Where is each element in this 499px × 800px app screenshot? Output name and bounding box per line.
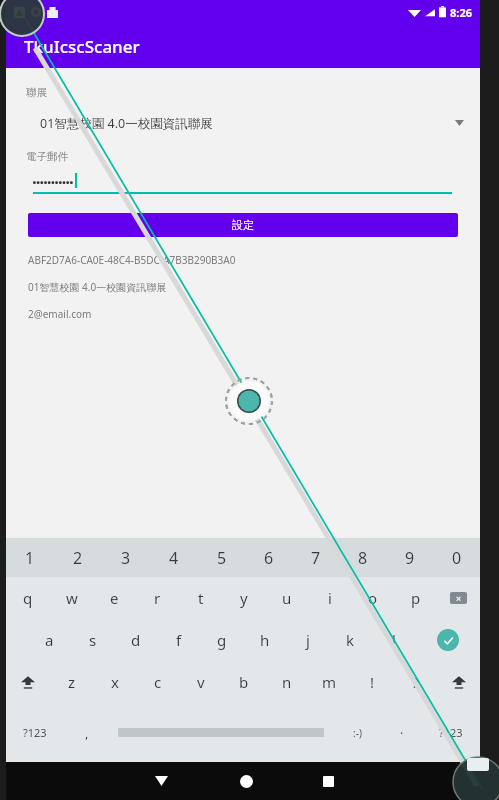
- button[interactable]: z: [50, 661, 93, 703]
- staticText: y: [240, 588, 248, 608]
- button[interactable]: q: [6, 577, 50, 619]
- staticText: ?123: [439, 725, 463, 740]
- button[interactable]: x: [93, 661, 136, 703]
- button[interactable]: Shift: [437, 661, 480, 703]
- staticText: 8:26: [450, 5, 472, 20]
- button[interactable]: 5: [198, 538, 245, 577]
- staticText: ×: [456, 592, 462, 604]
- button[interactable]: 0: [433, 538, 480, 577]
- staticText: 8: [358, 547, 368, 569]
- button[interactable]: u: [265, 577, 308, 619]
- staticText: m: [322, 672, 337, 692]
- button[interactable]: k: [329, 619, 372, 661]
- staticText: d: [131, 630, 141, 650]
- staticText: 0: [452, 547, 462, 569]
- staticText: 6: [264, 547, 274, 569]
- staticText: h: [260, 630, 270, 650]
- staticText: f: [176, 630, 182, 650]
- staticText: z: [68, 672, 76, 692]
- button[interactable]: 8: [339, 538, 386, 577]
- staticText: :-): [353, 726, 362, 740]
- button[interactable]: r: [136, 577, 179, 619]
- button[interactable]: d: [114, 619, 157, 661]
- staticText: b: [239, 672, 249, 692]
- button[interactable]: Space: [109, 703, 333, 762]
- button[interactable]: 6: [245, 538, 292, 577]
- button[interactable]: 設定: [28, 213, 458, 237]
- button[interactable]: 3: [102, 538, 150, 577]
- button[interactable]: Back: [115, 762, 207, 800]
- staticText: 3: [121, 547, 131, 569]
- staticText: !: [370, 672, 375, 692]
- staticText: 01智慧校園 4.0一校園資訊聯展: [28, 280, 167, 294]
- staticText: s: [89, 630, 97, 650]
- button[interactable]: n: [265, 661, 308, 703]
- staticText: p: [411, 588, 421, 608]
- button[interactable]: g: [200, 619, 243, 661]
- button[interactable]: 9: [386, 538, 433, 577]
- staticText: 5: [217, 547, 227, 569]
- button[interactable]: b: [222, 661, 265, 703]
- staticText: o: [368, 588, 378, 608]
- button[interactable]: m: [308, 661, 351, 703]
- staticText: x: [111, 672, 119, 692]
- button[interactable]: Home: [207, 762, 285, 800]
- button[interactable]: v: [179, 661, 222, 703]
- staticText: 4: [169, 547, 179, 569]
- button[interactable]: Enter: [415, 619, 480, 661]
- button[interactable]: p: [394, 577, 437, 619]
- button[interactable]: :-): [333, 703, 382, 762]
- staticText: 聯展: [26, 86, 47, 99]
- button[interactable]: j: [286, 619, 329, 661]
- staticText: a: [45, 630, 54, 650]
- staticText: 2: [73, 547, 83, 569]
- button[interactable]: ·: [382, 703, 422, 762]
- button[interactable]: [33, 173, 452, 194]
- staticText: i: [328, 588, 332, 608]
- staticText: ,: [85, 724, 89, 742]
- button[interactable]: h: [243, 619, 286, 661]
- staticText: ?: [412, 672, 419, 692]
- staticText: TkuIcscScaner: [24, 35, 140, 58]
- staticText: w: [66, 588, 78, 608]
- button[interactable]: i: [308, 577, 351, 619]
- button[interactable]: w: [50, 577, 93, 619]
- button[interactable]: 2: [54, 538, 102, 577]
- staticText: g: [217, 630, 227, 650]
- staticText: ?123: [23, 725, 47, 740]
- button[interactable]: s: [71, 619, 114, 661]
- button[interactable]: ?: [394, 661, 437, 703]
- button[interactable]: !: [351, 661, 394, 703]
- button[interactable]: y: [222, 577, 265, 619]
- button[interactable]: 4: [150, 538, 198, 577]
- staticText: q: [23, 588, 33, 608]
- button[interactable]: Recents: [285, 762, 371, 800]
- staticText: l: [392, 630, 396, 650]
- button[interactable]: ,: [64, 703, 109, 762]
- staticText: v: [197, 672, 205, 692]
- button[interactable]: l: [372, 619, 415, 661]
- button[interactable]: 01智慧校園 4.0一校園資訊聯展: [6, 108, 480, 138]
- button[interactable]: a: [28, 619, 71, 661]
- button[interactable]: Shift: [6, 661, 50, 703]
- button[interactable]: t: [179, 577, 222, 619]
- staticText: 1: [25, 547, 35, 569]
- staticText: 設定: [232, 218, 254, 232]
- staticText: n: [282, 672, 292, 692]
- button[interactable]: o: [351, 577, 394, 619]
- button[interactable]: ?123: [422, 703, 480, 762]
- staticText: 電子郵件: [26, 150, 68, 163]
- button[interactable]: 1: [6, 538, 54, 577]
- button[interactable]: TkuIcscScaner: [6, 24, 480, 68]
- staticText: c: [154, 672, 162, 692]
- button[interactable]: Backspace: [437, 577, 480, 619]
- button[interactable]: ?123: [6, 703, 64, 762]
- button[interactable]: c: [136, 661, 179, 703]
- button[interactable]: 7: [292, 538, 339, 577]
- staticText: j: [306, 630, 310, 650]
- staticText: ABF2D7A6-CA0E-48C4-B5DC-A7B3B290B3A0: [28, 253, 236, 267]
- button[interactable]: f: [157, 619, 200, 661]
- button[interactable]: e: [93, 577, 136, 619]
- staticText: u: [282, 588, 292, 608]
- staticText: e: [110, 588, 119, 608]
